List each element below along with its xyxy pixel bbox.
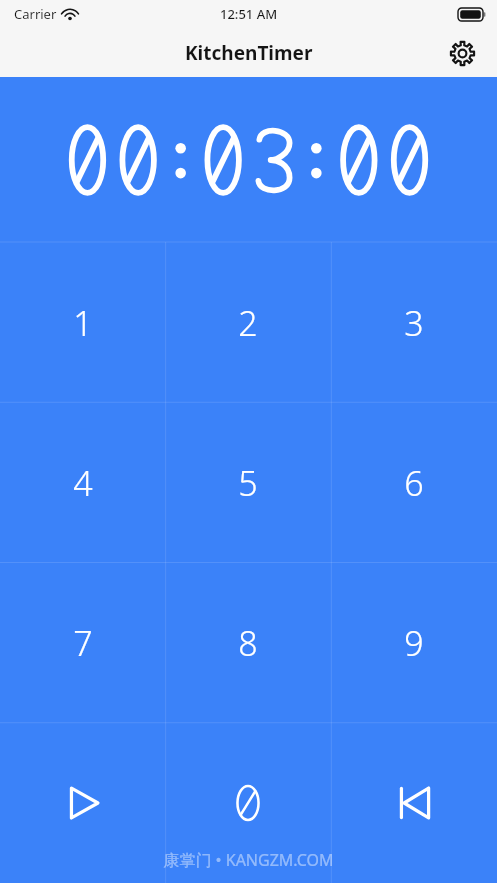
button[interactable]: Start [0,723,165,883]
button[interactable]: 9 [331,563,497,723]
staticText: 12:51 AM [220,5,278,23]
staticText: 7 [73,620,93,666]
staticText: 8 [238,620,258,666]
button[interactable]: Zero [165,723,331,883]
staticText: 1 [73,300,93,346]
staticText: Carrier [14,5,57,23]
button[interactable]: 7 [0,563,165,723]
staticText: 4 [73,460,93,506]
button[interactable]: 4 [0,403,165,563]
staticText: 2 [238,300,258,346]
button[interactable]: 3 [331,242,497,403]
staticText: 9 [404,620,424,666]
button[interactable]: Settings [445,36,479,70]
button[interactable]: 2 [165,242,331,403]
button[interactable]: 6 [331,403,497,563]
button[interactable]: 1 [0,242,165,403]
button[interactable]: Reset [331,723,497,883]
button[interactable]: 8 [165,563,331,723]
staticText: KitchenTimer [185,40,313,66]
staticText: 康掌门 • KANGZM.COM [163,849,334,871]
staticText: 5 [238,460,258,506]
staticText: 3 [404,300,424,346]
button[interactable]: 5 [165,403,331,563]
staticText: 6 [404,460,424,506]
